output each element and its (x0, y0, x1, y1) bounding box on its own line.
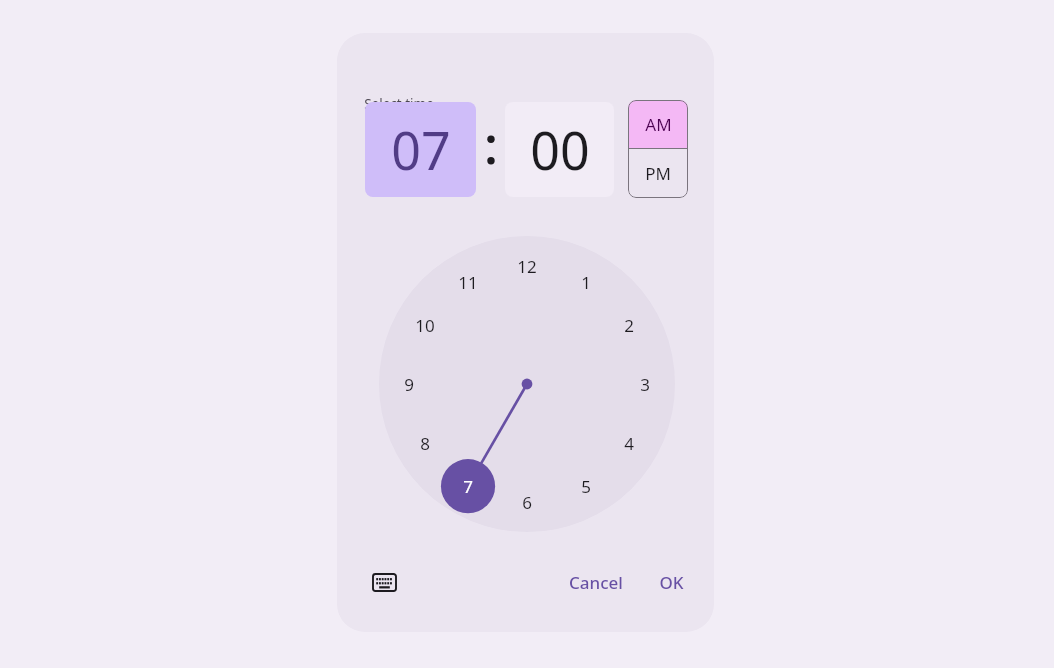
staticText: 5 (581, 475, 591, 498)
staticText: 9 (404, 373, 414, 396)
staticText: AM (645, 113, 672, 136)
staticText: OK (659, 571, 684, 594)
button[interactable] (379, 236, 675, 532)
staticText: PM (645, 162, 671, 185)
staticText: 11 (458, 271, 478, 294)
staticText: 3 (640, 373, 650, 396)
button[interactable]: 00 (505, 102, 614, 197)
button[interactable]: OK (647, 563, 696, 602)
button[interactable]: 07 (365, 102, 476, 197)
staticText: 7 (463, 475, 473, 498)
staticText: Select time (364, 95, 434, 113)
staticText: 00 (530, 114, 590, 185)
staticText: 12 (517, 255, 537, 278)
button[interactable]: Switch to text input mode (367, 565, 401, 599)
staticText: 10 (415, 314, 435, 337)
staticText: 1 (581, 271, 591, 294)
button[interactable]: Cancel (557, 563, 635, 602)
staticText: 4 (624, 432, 634, 455)
staticText: 8 (420, 432, 430, 455)
button[interactable]: PM (628, 149, 688, 198)
staticText: 07 (391, 114, 451, 185)
staticText: 6 (522, 491, 532, 514)
staticText: Cancel (569, 571, 623, 594)
staticText: 2 (624, 314, 634, 337)
button[interactable]: AM (628, 100, 688, 148)
